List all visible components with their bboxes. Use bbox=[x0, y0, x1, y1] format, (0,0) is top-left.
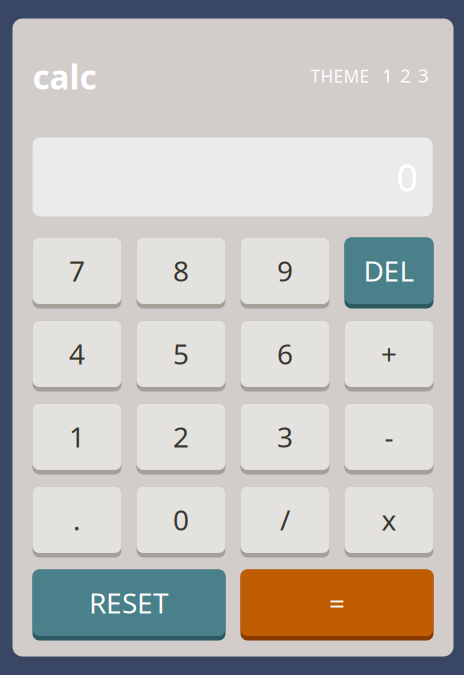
button[interactable]: Reset bbox=[32, 569, 225, 640]
staticText: 0 bbox=[396, 152, 417, 202]
button[interactable]: Decimal point bbox=[32, 486, 121, 557]
button[interactable]: 1 bbox=[32, 403, 121, 474]
staticText: 4 bbox=[69, 335, 85, 372]
staticText: + bbox=[381, 335, 397, 372]
button[interactable]: Equals bbox=[240, 569, 433, 640]
staticText: x bbox=[381, 501, 396, 538]
staticText: - bbox=[384, 418, 393, 455]
staticText: 5 bbox=[173, 335, 189, 372]
staticText: . bbox=[73, 501, 81, 538]
button[interactable]: 0 bbox=[136, 486, 225, 557]
button[interactable]: 8 bbox=[136, 237, 225, 308]
staticText: 1 bbox=[382, 63, 393, 88]
button[interactable]: 2 bbox=[136, 403, 225, 474]
staticText: 9 bbox=[277, 252, 293, 289]
button[interactable]: 7 bbox=[32, 237, 121, 308]
button[interactable]: 3 bbox=[240, 403, 329, 474]
button[interactable]: Add bbox=[344, 320, 433, 391]
staticText: calc bbox=[32, 54, 96, 99]
button[interactable]: Divide bbox=[240, 486, 329, 557]
button[interactable]: Subtract bbox=[344, 403, 433, 474]
staticText: 0 bbox=[173, 501, 189, 538]
button[interactable]: 6 bbox=[240, 320, 329, 391]
button[interactable]: Theme bbox=[310, 63, 432, 99]
staticText: / bbox=[280, 501, 290, 538]
staticText: 2 bbox=[400, 63, 411, 88]
staticText: 3 bbox=[418, 63, 429, 88]
staticText: THEME bbox=[310, 65, 369, 88]
staticText: 6 bbox=[277, 335, 293, 372]
button[interactable]: Multiply bbox=[344, 486, 433, 557]
staticText: 3 bbox=[277, 418, 293, 455]
button[interactable]: 4 bbox=[32, 320, 121, 391]
button[interactable]: 9 bbox=[240, 237, 329, 308]
staticText: 7 bbox=[69, 252, 85, 289]
staticText: DEL bbox=[363, 252, 414, 289]
staticText: RESET bbox=[89, 584, 169, 621]
staticText: 8 bbox=[173, 252, 189, 289]
staticText: 2 bbox=[173, 418, 189, 455]
staticText: = bbox=[329, 584, 345, 621]
button[interactable]: 5 bbox=[136, 320, 225, 391]
button[interactable]: Delete bbox=[344, 237, 433, 308]
staticText: 1 bbox=[69, 418, 85, 455]
